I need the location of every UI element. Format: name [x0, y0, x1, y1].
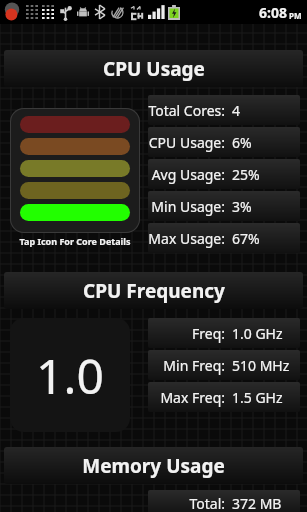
staticText: 3% [232, 197, 252, 216]
button[interactable]: Freq: [148, 318, 300, 348]
button[interactable]: Total Cores: [148, 95, 300, 125]
button[interactable]: Max Freq: [148, 382, 300, 412]
staticText: PM [289, 10, 302, 21]
staticText: Avg Usage: [151, 165, 225, 184]
staticText: 25% [232, 165, 260, 184]
button[interactable]: Min Usage: [148, 191, 300, 221]
staticText: Max Usage: [148, 229, 225, 248]
staticText: 6:08 [259, 3, 287, 22]
button[interactable]: CPU Usage: [148, 127, 300, 157]
staticText: Max Freq: [160, 388, 225, 407]
staticText: CPU Frequency [83, 278, 225, 304]
staticText: 510 MHz [232, 356, 290, 375]
staticText: 6% [232, 133, 252, 152]
button[interactable]: Min Freq: [148, 350, 300, 380]
button[interactable]: Core details [10, 108, 140, 233]
staticText: Total: [189, 494, 225, 512]
button[interactable]: Current frequency [10, 318, 130, 432]
staticText: Total Cores: [148, 101, 225, 120]
staticText: Min Usage: [151, 197, 225, 216]
staticText: Tap Icon For Core Details [10, 235, 140, 247]
staticText: 1.0 [36, 343, 104, 408]
staticText: 1.5 GHz [232, 388, 283, 407]
button[interactable]: Max Usage: [148, 223, 300, 253]
staticText: 372 MB [232, 494, 282, 512]
button[interactable]: Avg Usage: [148, 159, 300, 189]
staticText: CPU Usage [103, 56, 205, 82]
button[interactable]: Total: [148, 490, 300, 512]
staticText: 1.0 GHz [232, 324, 283, 343]
staticText: 67% [232, 229, 260, 248]
staticText: Min Freq: [163, 356, 225, 375]
staticText: CPU Usage: [148, 133, 225, 152]
staticText: Freq: [191, 324, 225, 343]
staticText: Memory Usage [82, 453, 225, 479]
staticText: 4 [232, 101, 241, 120]
